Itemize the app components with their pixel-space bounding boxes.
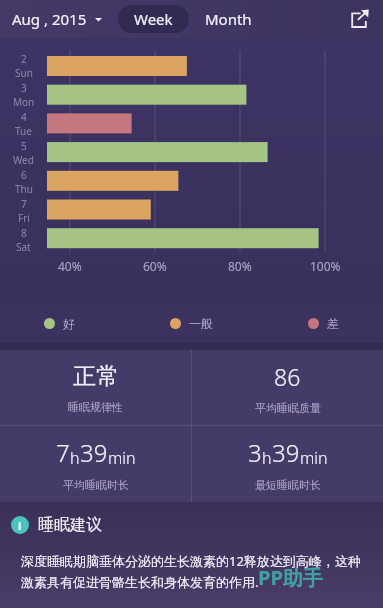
button[interactable]: Week bbox=[118, 5, 189, 33]
staticText: 5 bbox=[21, 139, 27, 153]
staticText: 一般 bbox=[189, 316, 213, 331]
staticText: Tue bbox=[15, 124, 32, 138]
staticText: PP助手 bbox=[258, 564, 323, 591]
button[interactable]: Month bbox=[197, 5, 260, 33]
button[interactable]: 3 bbox=[192, 426, 383, 502]
staticText: 正常 bbox=[73, 362, 119, 391]
button[interactable]: Aug , 2015 bbox=[8, 5, 106, 33]
staticText: Wed bbox=[13, 153, 34, 167]
button[interactable]: 正常 bbox=[0, 350, 191, 425]
staticText: 睡眠建议 bbox=[38, 515, 102, 535]
staticText: min bbox=[108, 447, 136, 469]
staticText: 86 bbox=[274, 361, 301, 392]
staticText: Thu bbox=[15, 182, 33, 196]
staticText: 最短睡眠时长 bbox=[255, 478, 321, 492]
staticText: 好 bbox=[63, 316, 75, 331]
staticText: h bbox=[70, 447, 80, 469]
staticText: Sun bbox=[15, 66, 33, 80]
button[interactable]: 86 bbox=[192, 350, 383, 425]
staticText: 7 bbox=[21, 197, 27, 211]
staticText: 6 bbox=[21, 168, 27, 182]
staticText: 3 bbox=[248, 436, 262, 469]
staticText: 100% bbox=[310, 258, 341, 274]
staticText: 深度睡眠期脑垂体分泌的生长激素的12释放达到高峰，这种激素具有促进骨骼生长和身体… bbox=[21, 552, 373, 591]
staticText: Week bbox=[134, 9, 173, 29]
staticText: Fri bbox=[18, 211, 30, 225]
staticText: 睡眠规律性 bbox=[68, 400, 123, 414]
staticText: Mon bbox=[13, 95, 35, 109]
staticText: 60% bbox=[143, 258, 167, 274]
staticText: 80% bbox=[228, 258, 252, 274]
staticText: i bbox=[18, 518, 22, 533]
button[interactable]: 7 bbox=[0, 426, 191, 502]
staticText: 39 bbox=[272, 436, 300, 469]
staticText: 2 bbox=[21, 52, 27, 66]
staticText: min bbox=[300, 447, 328, 469]
staticText: 8 bbox=[21, 226, 27, 240]
staticText: Sat bbox=[16, 240, 31, 254]
staticText: 7 bbox=[56, 436, 70, 469]
staticText: 39 bbox=[80, 436, 108, 469]
staticText: 平均睡眠时长 bbox=[63, 478, 129, 492]
staticText: 4 bbox=[21, 110, 27, 124]
staticText: 差 bbox=[327, 316, 339, 331]
staticText: h bbox=[262, 447, 272, 469]
staticText: 40% bbox=[58, 258, 82, 274]
staticText: Month bbox=[205, 9, 252, 29]
staticText: 平均睡眠质量 bbox=[255, 401, 321, 415]
staticText: 3 bbox=[21, 81, 27, 95]
button[interactable]: Share bbox=[343, 3, 375, 35]
staticText: Aug , 2015 bbox=[12, 9, 87, 29]
